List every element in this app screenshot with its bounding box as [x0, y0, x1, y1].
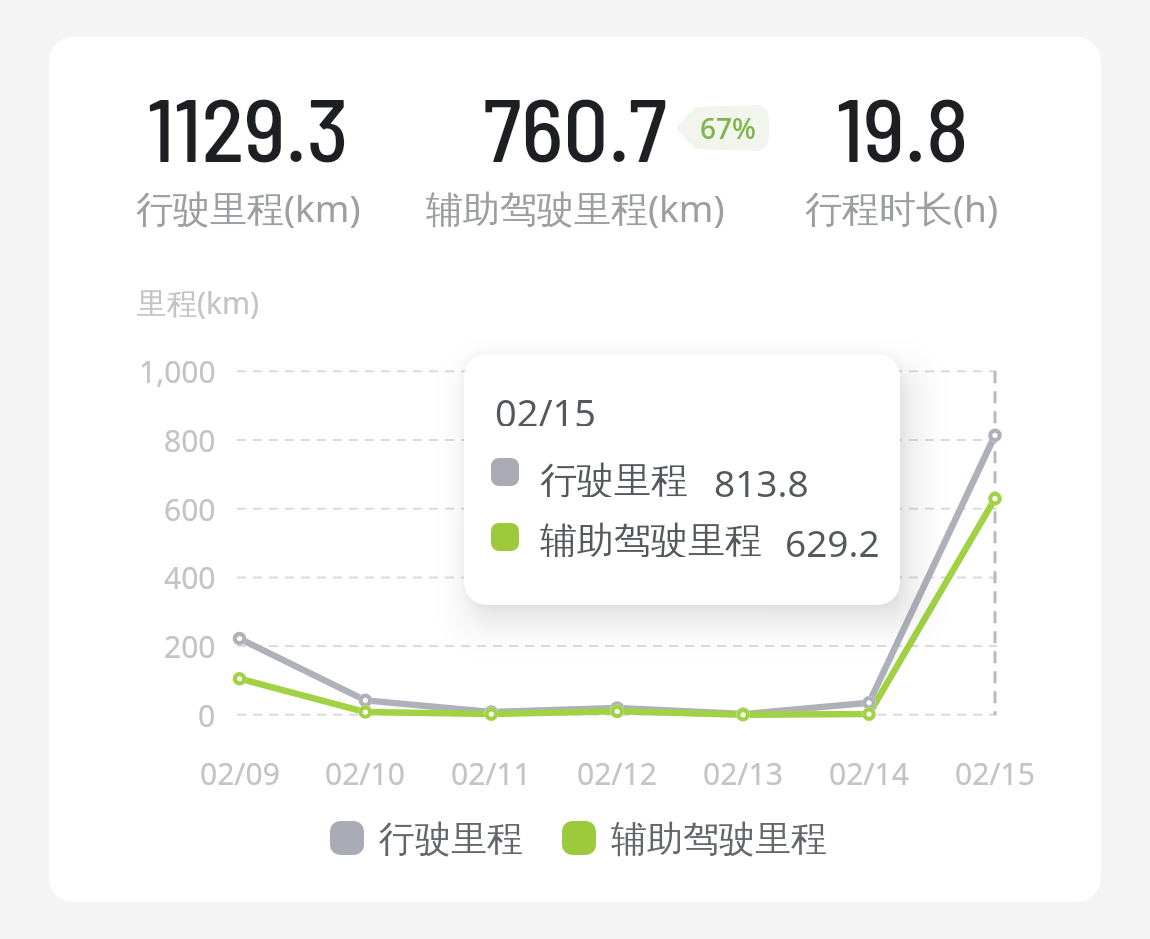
- staticText: 813.8: [714, 457, 809, 497]
- staticText: 02/15: [495, 386, 597, 426]
- staticText: 200: [164, 626, 216, 667]
- staticText: 02/14: [829, 753, 909, 794]
- button[interactable]: [562, 821, 596, 855]
- button[interactable]: [49, 37, 1101, 902]
- staticText: 629.2: [785, 517, 880, 557]
- staticText: 02/11: [451, 753, 531, 794]
- staticText: 760.7: [483, 73, 667, 163]
- button[interactable]: [330, 821, 364, 855]
- staticText: 02/09: [200, 753, 280, 794]
- button[interactable]: 02/15: [464, 354, 900, 605]
- staticText: 行驶里程(km): [136, 182, 361, 232]
- staticText: 行程时长(h): [805, 182, 999, 232]
- staticText: 行驶里程: [379, 816, 523, 860]
- staticText: 里程(km): [137, 282, 260, 323]
- staticText: 0: [198, 695, 216, 736]
- staticText: 67%: [700, 109, 756, 147]
- staticText: 400: [164, 557, 216, 598]
- staticText: 1129.3: [147, 73, 349, 163]
- staticText: 600: [164, 489, 216, 530]
- staticText: 辅助驾驶里程: [611, 816, 827, 860]
- staticText: 02/10: [325, 753, 405, 794]
- staticText: 辅助驾驶里程(km): [426, 182, 725, 232]
- button[interactable]: 67%: [676, 105, 769, 151]
- staticText: 行驶里程: [540, 457, 688, 497]
- staticText: 1,000: [139, 351, 216, 392]
- staticText: 辅助驾驶里程: [540, 517, 762, 557]
- staticText: 800: [164, 420, 216, 461]
- staticText: 19.8: [836, 73, 969, 163]
- staticText: 02/12: [577, 753, 657, 794]
- staticText: 02/15: [955, 753, 1035, 794]
- staticText: 02/13: [703, 753, 783, 794]
